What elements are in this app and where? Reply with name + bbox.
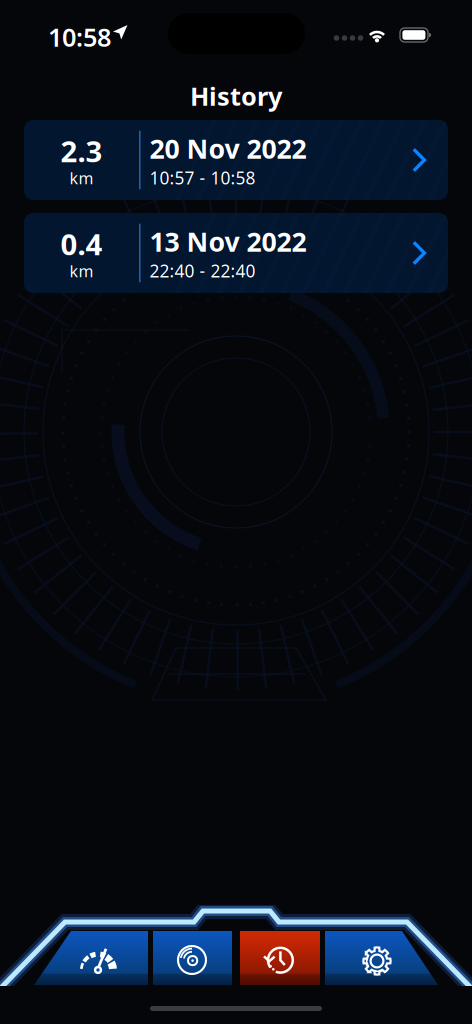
staticText: km <box>69 167 93 189</box>
staticText: km <box>69 260 93 282</box>
staticText: 20 Nov 2022 <box>150 131 307 166</box>
staticText: 22:40 - 22:40 <box>150 259 256 282</box>
staticText: 0.4 <box>60 224 102 263</box>
staticText: 13 Nov 2022 <box>150 224 307 259</box>
staticText: 10:58 <box>48 20 111 54</box>
button[interactable]: Dashboard <box>34 931 148 985</box>
button[interactable]: History <box>240 931 320 985</box>
button[interactable]: 0.4 <box>24 213 448 293</box>
button[interactable]: 2.3 <box>24 120 448 200</box>
button[interactable]: Settings <box>325 931 438 985</box>
button[interactable]: Records <box>153 931 232 985</box>
staticText: History <box>190 79 282 113</box>
staticText: 10:57 - 10:58 <box>150 166 256 189</box>
staticText: 2.3 <box>60 131 102 170</box>
